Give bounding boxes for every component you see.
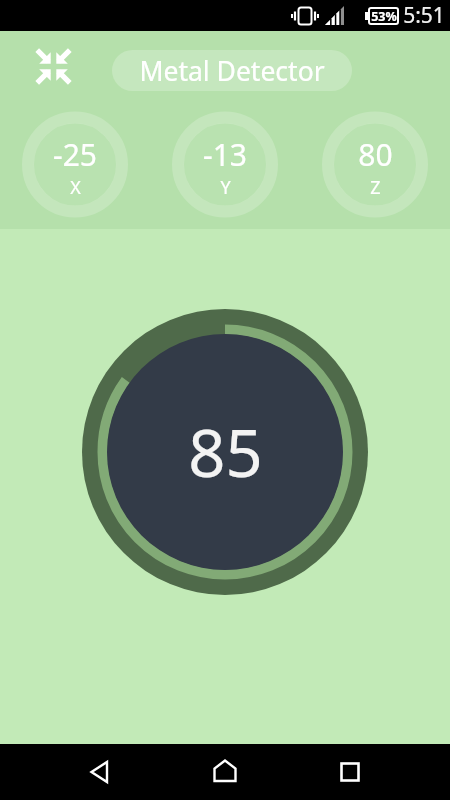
staticText: Z [370,175,381,200]
button[interactable] [189,744,261,800]
staticText: Y [220,175,231,200]
staticText: X [70,175,81,200]
button[interactable] [27,40,79,92]
staticText: 53% [371,8,397,25]
staticText: 5:51 [403,1,445,30]
staticText: 85 [188,408,263,497]
button[interactable]: Metal Detector [112,50,352,91]
staticText: -13 [203,134,247,175]
staticText: Metal Detector [139,53,325,89]
button[interactable] [64,744,136,800]
staticText: -25 [53,134,97,175]
button[interactable] [314,744,386,800]
staticText: 80 [358,134,393,175]
